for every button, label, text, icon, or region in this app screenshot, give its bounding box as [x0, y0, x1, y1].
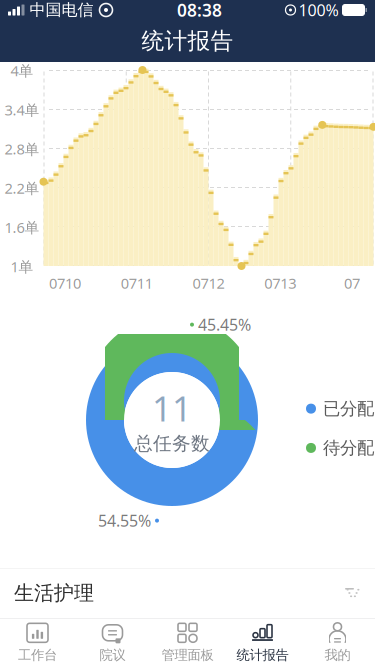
staticText: 中国电信 — [29, 0, 93, 20]
button[interactable]: 院议 — [75, 618, 150, 667]
staticText: 07 — [344, 273, 360, 293]
staticText: 管理面板 — [161, 647, 213, 663]
staticText: 2.2单 — [4, 178, 39, 198]
staticText: 100% — [298, 0, 338, 21]
staticText: 统计报告 — [236, 647, 288, 663]
staticText: 0713 — [264, 273, 296, 293]
staticText: 工作台 — [18, 647, 57, 663]
staticText: 0710 — [49, 273, 81, 293]
staticText: 我的 — [324, 647, 350, 663]
staticText: 45.45% — [198, 314, 251, 335]
button[interactable]: 我的 — [300, 618, 375, 667]
staticText: 1单 — [10, 257, 33, 276]
staticText: 已分配 — [323, 398, 374, 419]
staticText: 3.4单 — [4, 100, 39, 119]
staticText: 统计报告 — [141, 27, 233, 55]
staticText: 总任务数 — [134, 432, 210, 455]
staticText: 11 — [152, 385, 192, 431]
button[interactable]: 生活护理 — [0, 568, 375, 618]
staticText: 54.55% — [98, 510, 151, 531]
staticText: 待分配 — [323, 437, 374, 459]
button[interactable]: 工作台 — [0, 618, 75, 667]
staticText: 生活护理 — [14, 581, 94, 605]
staticText: 4单 — [10, 61, 33, 80]
button[interactable]: 统计报告 — [225, 618, 300, 667]
button[interactable]: 管理面板 — [150, 618, 225, 667]
staticText: 0711 — [121, 273, 153, 293]
staticText: 08:38 — [177, 0, 222, 21]
staticText: 1.6单 — [4, 218, 39, 237]
staticText: 0712 — [192, 273, 224, 293]
staticText: 院议 — [99, 647, 125, 663]
staticText: 2.8单 — [4, 139, 39, 159]
